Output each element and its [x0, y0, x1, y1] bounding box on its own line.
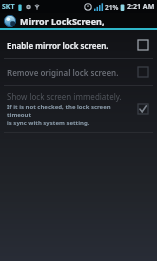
button[interactable]: Unchecked	[135, 64, 151, 80]
button[interactable]: Enable mirror lock screen.	[0, 32, 157, 58]
staticText: SKT	[2, 2, 15, 12]
button[interactable]: Show lock screen immediately.	[0, 86, 157, 132]
staticText: Mirror LockScreen,	[20, 15, 105, 27]
staticText: Show lock screen immediately.	[7, 91, 122, 102]
button[interactable]: Checked	[135, 101, 151, 117]
staticText: Enable mirror lock screen.	[7, 40, 109, 51]
staticText: 2:21 AM	[127, 2, 155, 12]
staticText: If it is not checked, the lock screen ti…	[7, 103, 131, 127]
button[interactable]: Unchecked	[135, 37, 151, 53]
staticText: 21%	[105, 3, 119, 12]
button[interactable]: Remove original lock screen.	[0, 59, 157, 85]
staticText: Remove original lock screen.	[7, 67, 119, 78]
